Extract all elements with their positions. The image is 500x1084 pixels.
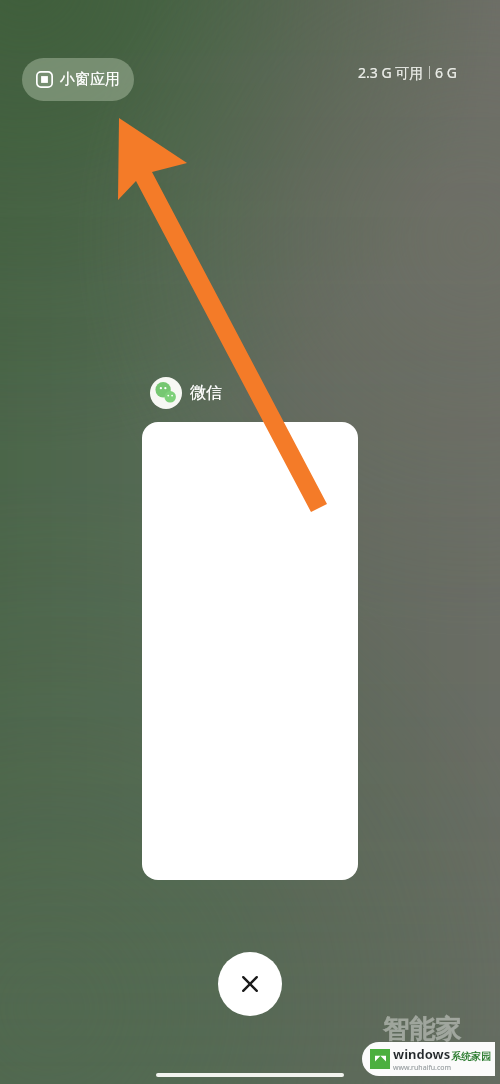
staticText: 2.3 G 可用	[358, 63, 424, 82]
staticText: 智能家	[383, 1013, 461, 1046]
button[interactable]	[142, 422, 358, 880]
staticText: 6 G	[435, 63, 457, 82]
staticText: 小窗应用	[60, 70, 120, 89]
staticText: 微信	[190, 383, 222, 403]
button[interactable]: 小窗应用	[22, 58, 134, 101]
staticText: windows	[393, 1045, 451, 1063]
staticText: www.ruhaifu.com	[393, 1063, 452, 1073]
button[interactable]: Close	[218, 952, 282, 1016]
staticText: 系统家园	[451, 1050, 491, 1063]
